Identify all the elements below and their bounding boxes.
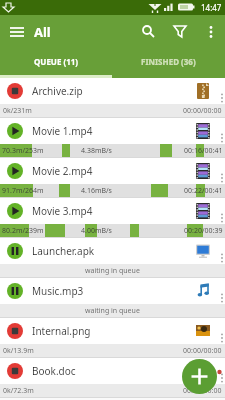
button[interactable]: Music.mp3 (0, 278, 225, 318)
staticText: Launcher.apk (32, 244, 225, 258)
staticText: Movie 2.mp4 (32, 164, 225, 178)
button[interactable]: Book.doc (0, 358, 225, 398)
staticText: 4.00mB/s (81, 226, 112, 236)
staticText: 14:47 (201, 2, 222, 13)
button[interactable]: Archive.zip (0, 78, 225, 118)
staticText: Internal.png (32, 324, 225, 338)
button[interactable]: Movie 3.mp4 (0, 198, 225, 238)
staticText: Archive.zip (32, 84, 225, 98)
staticText: 0k/13.9m (3, 346, 34, 356)
button[interactable]: QUEUE (11) (0, 48, 112, 75)
staticText: 4.16mB/s (81, 186, 112, 196)
button[interactable] (6, 21, 28, 43)
button[interactable]: Movie 1.mp4 (0, 118, 225, 158)
staticText: 0k/72.3m (3, 386, 34, 396)
staticText: QUEUE (11) (34, 56, 79, 67)
button[interactable]: Internal.png (0, 318, 225, 358)
staticText: 91.7m/264m (2, 186, 44, 196)
staticText: 00:20/00:39 (184, 226, 223, 236)
button[interactable] (169, 20, 193, 44)
staticText: 80.2m/239m (2, 226, 44, 236)
staticText: 00:22/00:41 (184, 186, 223, 196)
staticText: 00:16/00:41 (184, 146, 223, 156)
button[interactable]: FINISHED (36) (112, 48, 225, 75)
staticText: 00:00/00:00 (183, 106, 222, 116)
staticText: waiting in queue (85, 306, 140, 316)
staticText: Movie 1.mp4 (32, 124, 225, 138)
staticText: 70.3m/253m (2, 146, 44, 156)
staticText: waiting in queue (85, 266, 140, 276)
button[interactable] (182, 359, 217, 394)
staticText: All (34, 23, 51, 41)
staticText: 0k/231m (3, 106, 32, 116)
staticText: Book.doc (32, 364, 225, 378)
staticText: FINISHED (36) (141, 56, 196, 67)
staticText: 00:00/00:00 (183, 386, 222, 396)
button[interactable] (201, 22, 221, 42)
button[interactable]: Movie 2.mp4 (0, 158, 225, 198)
button[interactable]: Launcher.apk (0, 238, 225, 278)
staticText: 00:00/00:00 (183, 346, 222, 356)
staticText: Music.mp3 (32, 284, 225, 298)
staticText: Movie 3.mp4 (32, 204, 225, 218)
staticText: 4.38mB/s (81, 146, 112, 156)
button[interactable] (137, 20, 161, 44)
